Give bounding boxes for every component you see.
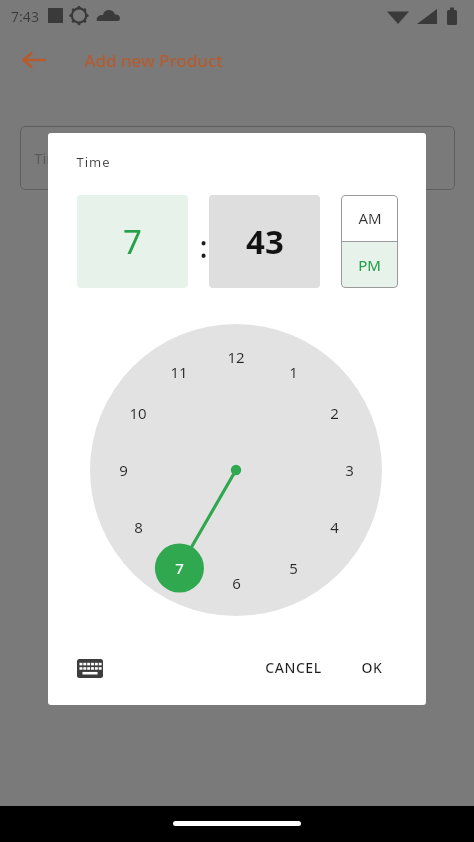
staticText: :	[199, 226, 208, 267]
staticText: Add new Product	[84, 49, 223, 72]
staticText: AM	[358, 208, 382, 228]
staticText: 43	[246, 219, 284, 264]
staticText: 8	[134, 517, 143, 537]
button[interactable]: PM	[341, 242, 398, 288]
staticText: Time	[76, 153, 111, 171]
staticText: 11	[170, 362, 188, 382]
staticText: 6	[232, 573, 241, 593]
staticText: 12	[227, 347, 245, 367]
button[interactable]: 7	[77, 195, 188, 288]
staticText: 2	[330, 403, 339, 423]
staticText: PM	[358, 255, 381, 275]
button[interactable]: AM	[341, 195, 398, 241]
staticText: OK	[361, 658, 383, 677]
staticText: 10	[129, 403, 147, 423]
staticText: Time	[34, 148, 69, 168]
staticText: 4	[330, 517, 339, 537]
button[interactable]: OK	[341, 645, 403, 689]
button[interactable]: Switch to text input	[70, 648, 110, 688]
button[interactable]: CANCEL	[255, 645, 331, 689]
staticText: 7	[123, 219, 142, 264]
staticText: 7	[175, 558, 184, 578]
staticText: 7:43	[11, 7, 39, 26]
button[interactable]: Time	[20, 126, 455, 190]
button[interactable]: 43	[209, 195, 320, 288]
button[interactable]: Back	[10, 36, 58, 84]
staticText: 9	[119, 460, 128, 480]
staticText: 1	[289, 362, 298, 382]
staticText: 5	[289, 558, 298, 578]
staticText: 3	[345, 460, 354, 480]
staticText: CANCEL	[265, 658, 322, 677]
button[interactable]: 12	[90, 324, 382, 616]
